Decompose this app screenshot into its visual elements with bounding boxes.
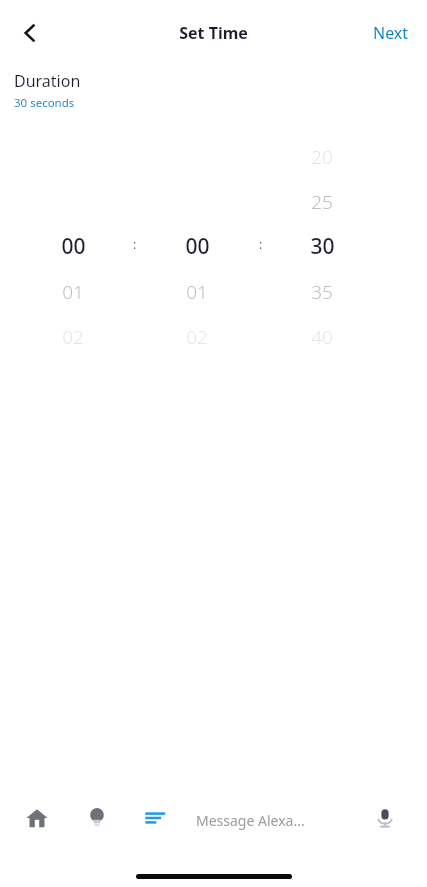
staticText: Duration bbox=[14, 70, 81, 92]
staticText: : bbox=[133, 236, 137, 250]
staticText: Next bbox=[373, 22, 409, 44]
staticText: 25 bbox=[311, 189, 333, 215]
staticText: 02 bbox=[62, 324, 84, 350]
staticText: 30 bbox=[310, 232, 335, 261]
staticText: 01 bbox=[62, 279, 84, 305]
button[interactable]: Devices bbox=[80, 801, 114, 835]
staticText: 02 bbox=[186, 324, 208, 350]
staticText: 35 bbox=[311, 279, 333, 305]
staticText: 20 bbox=[311, 144, 333, 170]
button[interactable]: Time wheel bbox=[159, 140, 235, 325]
button[interactable]: Time wheel bbox=[284, 140, 360, 325]
button[interactable]: Voice input bbox=[368, 801, 402, 835]
staticText: 30 seconds bbox=[14, 95, 75, 111]
button[interactable]: Back bbox=[8, 11, 52, 55]
button[interactable]: Message Alexa... bbox=[196, 804, 356, 836]
staticText: : bbox=[259, 236, 263, 250]
staticText: 00 bbox=[185, 232, 210, 261]
staticText: 00 bbox=[61, 232, 86, 261]
staticText: 01 bbox=[186, 279, 208, 305]
button[interactable]: Home bbox=[20, 801, 54, 835]
staticText: 40 bbox=[311, 324, 333, 350]
staticText: Set Time bbox=[179, 22, 248, 44]
button[interactable]: Activity bbox=[138, 801, 172, 835]
button[interactable]: Time wheel bbox=[35, 140, 111, 325]
button[interactable]: Next bbox=[365, 14, 417, 52]
staticText: Message Alexa... bbox=[196, 811, 305, 830]
